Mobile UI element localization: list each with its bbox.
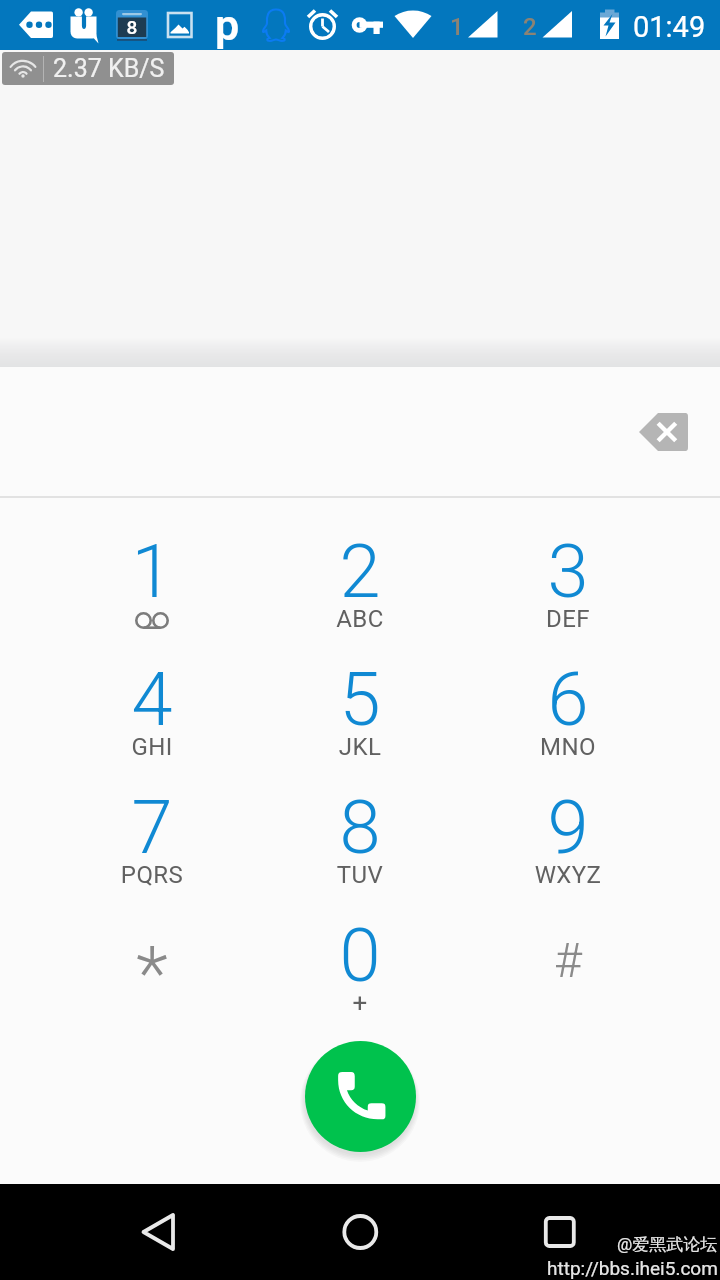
staticText: TUV	[256, 861, 464, 889]
button[interactable]: 8	[256, 754, 464, 882]
staticText: p	[215, 0, 240, 50]
button[interactable]: Home	[312, 1196, 408, 1268]
button[interactable]: *	[48, 882, 256, 1010]
staticText: 8	[116, 16, 148, 38]
staticText: 1	[450, 13, 464, 41]
staticText: 4	[48, 656, 256, 743]
staticText: 2	[523, 13, 537, 41]
staticText: DEF	[464, 605, 672, 633]
staticText: 6	[464, 656, 672, 743]
staticText: 7	[48, 784, 256, 871]
staticText: PQRS	[48, 861, 256, 889]
button[interactable]: 6	[464, 626, 672, 754]
staticText: GHI	[48, 733, 256, 761]
staticText: 9	[464, 784, 672, 871]
staticText: 5	[256, 656, 464, 743]
button[interactable]: 3	[464, 498, 672, 626]
staticText: @爱黑武论坛	[617, 1234, 718, 1255]
staticText: WXYZ	[464, 861, 672, 889]
staticText: +	[256, 988, 464, 1018]
button[interactable]: Call	[305, 1041, 416, 1152]
staticText: MNO	[464, 733, 672, 761]
button[interactable]: #	[464, 882, 672, 1010]
button[interactable]: Backspace	[632, 402, 695, 462]
button[interactable]: 1	[48, 498, 256, 626]
button[interactable]: 7	[48, 754, 256, 882]
staticText: 0	[256, 912, 464, 999]
button[interactable]: 2	[256, 498, 464, 626]
staticText: #	[464, 932, 672, 988]
button[interactable]: 0	[256, 882, 464, 1010]
staticText: 3	[464, 528, 672, 615]
button[interactable]: Recent apps	[512, 1196, 608, 1268]
button[interactable]: 5	[256, 626, 464, 754]
staticText: ABC	[256, 605, 464, 633]
staticText: 2.37 KB/S	[53, 54, 165, 83]
staticText: *	[48, 930, 256, 1017]
button[interactable]: 9	[464, 754, 672, 882]
staticText: 2	[256, 528, 464, 615]
staticText: 8	[256, 784, 464, 871]
button[interactable]: 4	[48, 626, 256, 754]
staticText: 1	[48, 528, 256, 615]
staticText: http://bbs.ihei5.com	[547, 1257, 718, 1279]
staticText: JKL	[256, 733, 464, 761]
button[interactable]: Back	[112, 1196, 208, 1268]
staticText: 01:49	[633, 10, 706, 44]
